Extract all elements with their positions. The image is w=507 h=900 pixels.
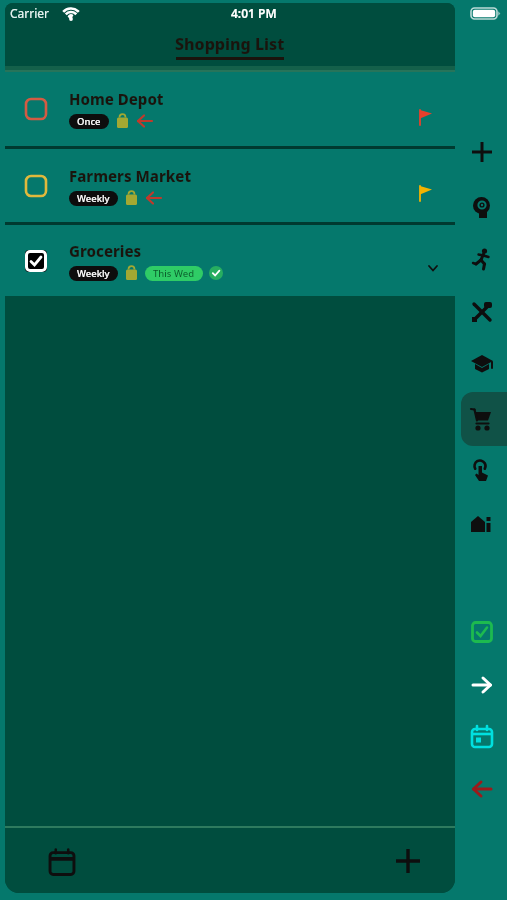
button[interactable] xyxy=(464,134,500,170)
button[interactable] xyxy=(464,614,500,650)
staticText: Carrier xyxy=(10,5,50,21)
button[interactable] xyxy=(464,719,500,755)
button[interactable]: Home Depot xyxy=(5,72,455,146)
button[interactable] xyxy=(464,771,500,807)
button[interactable] xyxy=(464,507,500,543)
button[interactable] xyxy=(464,294,500,330)
staticText: Shopping List xyxy=(175,33,285,55)
button[interactable] xyxy=(464,453,500,489)
button[interactable] xyxy=(388,841,428,881)
button[interactable]: Farmers Market xyxy=(5,149,455,222)
staticText: Once xyxy=(77,115,101,128)
button[interactable] xyxy=(464,401,500,437)
button[interactable] xyxy=(464,241,500,277)
button[interactable] xyxy=(42,842,82,882)
staticText: This Wed xyxy=(153,267,195,280)
button[interactable] xyxy=(464,667,500,703)
staticText: Farmers Market xyxy=(69,166,192,186)
button[interactable] xyxy=(464,347,500,383)
staticText: Weekly xyxy=(77,192,110,205)
staticText: Weekly xyxy=(77,267,110,280)
staticText: Groceries xyxy=(69,241,142,261)
staticText: 4:01 PM xyxy=(231,5,277,21)
button[interactable]: Groceries xyxy=(5,225,455,296)
staticText: Home Depot xyxy=(69,89,164,109)
button[interactable] xyxy=(464,189,500,225)
